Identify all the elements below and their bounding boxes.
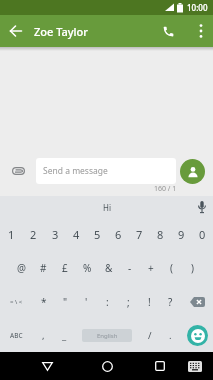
button[interactable] [185,356,205,376]
button[interactable]: £ [54,251,76,285]
staticText: ! [148,295,151,309]
button[interactable] [149,355,171,377]
button[interactable]: Send a message [36,158,176,184]
button[interactable]: 6 [108,218,129,251]
staticText: : [106,295,109,309]
button[interactable]: _ [54,318,75,352]
button[interactable] [0,158,36,184]
staticText: * [41,295,47,309]
staticText: ; [127,295,130,309]
staticText: % [83,261,92,275]
button[interactable]: = \ < [0,285,33,318]
button[interactable] [180,159,205,184]
staticText: / [148,329,152,342]
button[interactable]: - [119,251,140,285]
staticText: English [97,332,118,340]
button[interactable]: ) [182,251,203,285]
staticText: Hi [103,202,111,213]
button[interactable] [36,355,58,377]
button[interactable] [153,16,183,46]
button[interactable]: * [33,285,55,318]
button[interactable]: # [32,251,54,285]
button[interactable]: ' [76,285,97,318]
button[interactable] [181,318,213,352]
button[interactable]: 1 [0,218,22,251]
button[interactable]: + [140,251,161,285]
staticText: 160 / 1 [154,184,177,194]
staticText: " [63,295,68,309]
staticText: 2 [30,227,37,242]
button[interactable]: Hi [0,196,213,218]
staticText: 8 [157,227,164,242]
button[interactable] [0,15,32,47]
button[interactable]: 9 [171,218,192,251]
button[interactable]: ABC [0,318,33,352]
staticText: ' [85,295,88,309]
button[interactable]: . [160,318,181,352]
button[interactable]: ! [139,285,160,318]
staticText: Zoe Taylor [34,24,88,39]
staticText: . [169,329,172,342]
button[interactable]: 5 [87,218,108,251]
button[interactable]: % [76,251,98,285]
button[interactable]: : [97,285,118,318]
staticText: ( [170,261,173,275]
button[interactable]: 0 [192,218,213,251]
staticText: # [40,261,47,275]
button[interactable]: 2 [22,218,44,251]
staticText: , [42,329,45,342]
staticText: 6 [115,227,122,242]
staticText: ? [168,295,173,309]
button[interactable] [96,355,118,377]
staticText: 0 [199,227,206,242]
button[interactable]: , [33,318,54,352]
button[interactable]: & [98,251,119,285]
staticText: @ [17,261,26,275]
staticText: ) [191,261,194,275]
button[interactable] [181,285,213,318]
staticText: 1 [8,227,15,242]
staticText: 4 [73,227,80,242]
button[interactable]: 8 [150,218,171,251]
button[interactable]: / [139,318,160,352]
staticText: Send a message [43,165,108,177]
button[interactable]: ( [161,251,182,285]
staticText: _ [62,329,67,342]
staticText: £ [62,261,68,275]
button[interactable]: 3 [44,218,66,251]
button[interactable]: English [75,318,139,352]
button[interactable]: ? [160,285,181,318]
staticText: 3 [52,227,59,242]
staticText: 7 [136,227,143,242]
staticText: + [148,261,154,275]
button[interactable]: ; [118,285,139,318]
button[interactable]: @ [10,251,32,285]
staticText: = \ < [10,298,23,306]
button[interactable] [191,196,213,218]
button[interactable] [189,19,213,43]
staticText: - [128,261,132,275]
button[interactable]: 7 [129,218,150,251]
staticText: 9 [178,227,185,242]
staticText: 5 [94,227,101,242]
staticText: & [105,261,113,275]
button[interactable]: " [55,285,76,318]
staticText: 10:00 [187,2,208,13]
staticText: ABC [10,331,23,340]
button[interactable]: 4 [66,218,87,251]
